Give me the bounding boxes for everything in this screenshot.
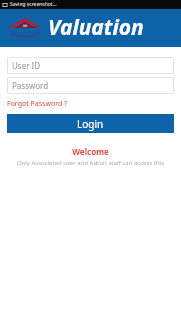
- staticText: Forgot Password ?: [7, 99, 68, 109]
- button[interactable]: Forgot Password ?: [7, 98, 68, 110]
- staticText: Valuation: [48, 13, 144, 42]
- staticText: User ID: [12, 60, 41, 71]
- button[interactable]: User ID: [7, 57, 174, 74]
- staticText: Password: [12, 80, 49, 91]
- staticText: Login: [77, 117, 104, 131]
- staticText: Only Associated user and Adroit staff ca…: [7, 159, 174, 167]
- staticText: Welcome: [7, 146, 174, 157]
- staticText: Saving screenshot...: [10, 1, 57, 8]
- button[interactable]: Login: [7, 114, 174, 133]
- button[interactable]: Password: [7, 77, 174, 94]
